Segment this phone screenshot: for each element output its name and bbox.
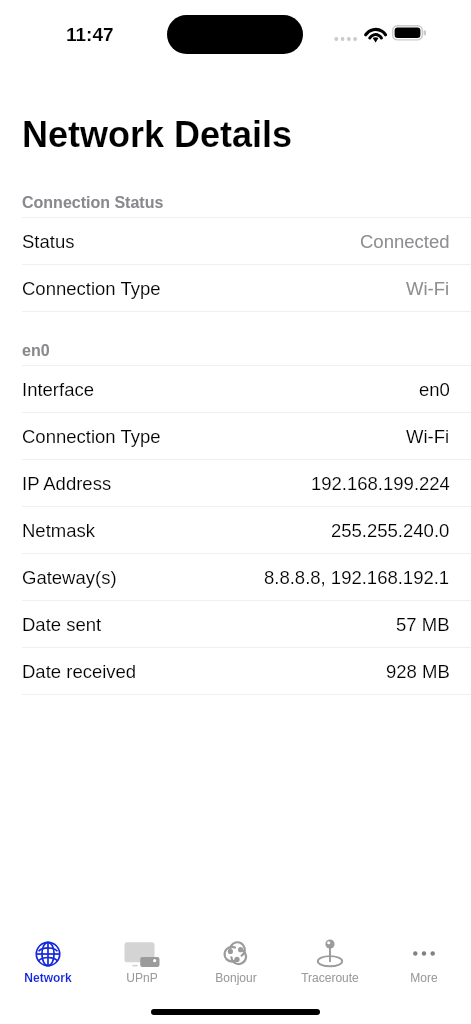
staticText: Connected: [360, 231, 450, 252]
other: Traceroute: [312, 940, 348, 967]
staticText: More: [410, 971, 438, 984]
button[interactable]: Netmask: [0, 507, 471, 554]
staticText: Wi-Fi: [406, 278, 450, 299]
staticText: Gateway(s): [22, 567, 117, 588]
staticText: 192.168.199.224: [311, 473, 450, 494]
staticText: Connection Status: [22, 194, 164, 212]
staticText: Connection Type: [22, 426, 161, 447]
button[interactable]: IP Address: [0, 460, 471, 507]
button[interactable]: Interface: [0, 366, 471, 413]
button[interactable]: Connection Type: [0, 413, 471, 460]
staticText: Traceroute: [301, 971, 359, 984]
staticText: Status: [22, 231, 75, 252]
button[interactable]: Date received: [0, 648, 471, 695]
button[interactable]: More: [377, 922, 471, 984]
other: Network: [30, 940, 66, 967]
staticText: 255.255.240.0: [331, 520, 450, 541]
staticText: Date received: [22, 661, 137, 682]
staticText: Interface: [22, 379, 94, 400]
button[interactable]: Network: [0, 922, 95, 984]
staticText: 11:47: [66, 24, 114, 45]
button[interactable]: Bonjour: [189, 922, 283, 984]
staticText: 8.8.8.8, 192.168.192.1: [264, 567, 450, 588]
staticText: Netmask: [22, 520, 95, 541]
button[interactable]: Traceroute: [283, 922, 377, 984]
staticText: en0: [419, 379, 450, 400]
staticText: UPnP: [126, 971, 158, 984]
staticText: Wi-Fi: [406, 426, 450, 447]
staticText: en0: [22, 342, 50, 360]
staticText: Bonjour: [215, 971, 257, 984]
button[interactable]: Date sent: [0, 601, 471, 648]
other: More: [406, 940, 442, 967]
other: Bonjour: [218, 940, 254, 967]
staticText: Network: [24, 971, 72, 984]
other: UPnP: [124, 940, 160, 967]
button[interactable]: Connection Type: [0, 265, 471, 312]
button[interactable]: Gateway(s): [0, 554, 471, 601]
button[interactable]: Status: [0, 218, 471, 265]
staticText: IP Address: [22, 473, 112, 494]
staticText: Date sent: [22, 614, 102, 635]
staticText: Connection Type: [22, 278, 161, 299]
staticText: 928 MB: [386, 661, 450, 682]
button[interactable]: UPnP: [95, 922, 189, 984]
staticText: Network Details: [22, 114, 293, 154]
staticText: 57 MB: [396, 614, 450, 635]
